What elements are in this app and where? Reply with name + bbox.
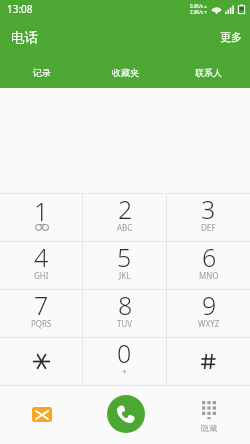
button[interactable]: 1 xyxy=(0,194,82,241)
staticText: 2.0K/s xyxy=(190,9,203,15)
staticText: ABC xyxy=(117,222,133,233)
staticText: 3 xyxy=(201,192,216,226)
staticText: DEF xyxy=(201,222,216,233)
button[interactable]: Message xyxy=(0,386,84,444)
button[interactable]: Hide keypad xyxy=(167,386,250,444)
staticText: 4 xyxy=(34,240,49,274)
button[interactable]: 8 xyxy=(83,290,166,337)
staticText: 2 xyxy=(118,192,133,226)
button[interactable]: 6 xyxy=(167,242,250,289)
staticText: 隐藏 xyxy=(201,423,217,433)
staticText: 5 xyxy=(117,240,132,274)
button[interactable]: 5 xyxy=(83,242,166,289)
button[interactable]: 7 xyxy=(0,290,82,337)
staticText: PQRS xyxy=(31,318,52,329)
staticText: 联系人 xyxy=(195,67,222,78)
button[interactable]: 收藏夹 xyxy=(84,56,167,88)
staticText: 0 xyxy=(117,336,132,370)
button[interactable]: 4 xyxy=(0,242,82,289)
staticText: 8 xyxy=(118,288,133,322)
staticText: + xyxy=(122,366,127,377)
button[interactable]: 9 xyxy=(167,290,250,337)
staticText: 7 xyxy=(34,288,49,322)
button[interactable]: 2 xyxy=(83,194,166,241)
staticText: 记录 xyxy=(33,67,51,78)
staticText: WXYZ xyxy=(198,318,220,329)
button[interactable]: Call xyxy=(84,386,167,444)
staticText: 0.0K/s xyxy=(190,3,203,9)
staticText: 更多 xyxy=(220,30,242,44)
staticText: 电话 xyxy=(11,29,38,46)
staticText: 6 xyxy=(202,240,217,274)
button[interactable]: 更多 xyxy=(209,22,250,52)
button[interactable]: 0 xyxy=(83,338,166,385)
staticText: 9 xyxy=(202,288,217,322)
staticText: GHI xyxy=(34,270,49,281)
staticText: 1 xyxy=(34,194,49,228)
button[interactable]: 3 xyxy=(167,194,250,241)
staticText: JKL xyxy=(119,270,131,281)
button[interactable]: 记录 xyxy=(0,56,84,88)
button[interactable] xyxy=(0,338,82,385)
button[interactable]: 联系人 xyxy=(167,56,250,88)
staticText: 13:08 xyxy=(7,2,33,16)
staticText: MNO xyxy=(199,270,219,281)
staticText: TUV xyxy=(117,318,133,329)
button[interactable] xyxy=(167,338,250,385)
staticText: 收藏夹 xyxy=(112,67,139,78)
